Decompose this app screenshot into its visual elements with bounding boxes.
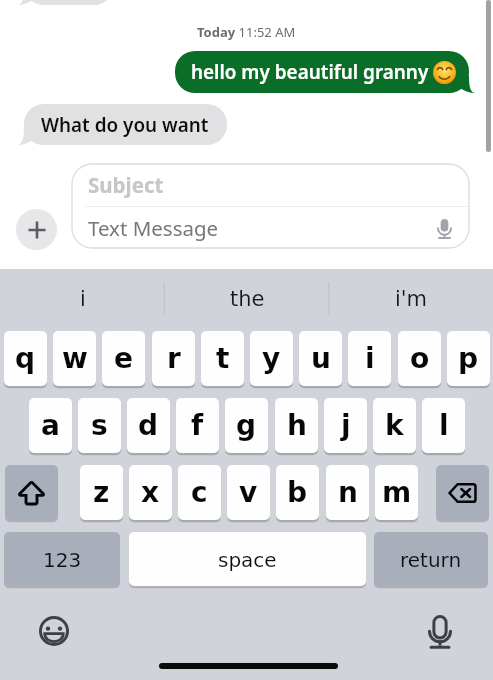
staticText: c: [191, 476, 208, 509]
button[interactable]: o: [398, 331, 441, 386]
staticText: 123: [43, 548, 82, 571]
button[interactable]: Emoji keyboard: [39, 616, 69, 646]
button[interactable]: b: [276, 465, 319, 520]
staticText: s: [91, 409, 108, 442]
button[interactable]: u: [299, 331, 342, 386]
button[interactable]: m: [375, 465, 418, 520]
button[interactable]: t: [201, 331, 244, 386]
staticText: k: [385, 409, 404, 442]
staticText: f: [191, 409, 204, 442]
staticText: space: [218, 548, 277, 571]
button[interactable]: r: [152, 331, 195, 386]
staticText: g: [236, 409, 257, 442]
staticText: l: [439, 409, 449, 442]
staticText: v: [239, 476, 258, 509]
button[interactable]: Backspace: [436, 465, 489, 520]
staticText: o: [410, 342, 430, 375]
staticText: j: [341, 409, 351, 442]
button[interactable]: hello my beautiful granny: [175, 51, 475, 93]
staticText: d: [138, 409, 159, 442]
button[interactable]: Subject: [72, 164, 469, 248]
staticText: hello my beautiful granny: [191, 59, 429, 85]
staticText: i: [80, 287, 86, 311]
button[interactable]: x: [129, 465, 172, 520]
staticText: n: [338, 476, 358, 509]
staticText: Subject: [88, 171, 164, 199]
button[interactable]: i: [348, 331, 391, 386]
button[interactable]: k: [373, 398, 416, 453]
button[interactable]: i'm: [329, 269, 493, 329]
button[interactable]: return: [374, 532, 488, 586]
staticText: a: [41, 409, 60, 442]
button[interactable]: space: [129, 532, 366, 586]
button[interactable]: f: [176, 398, 219, 453]
staticText: i: [365, 342, 375, 375]
staticText: q: [15, 342, 36, 375]
button[interactable]: l: [422, 398, 465, 453]
button[interactable]: Dictation: [428, 615, 452, 649]
button[interactable]: n: [326, 465, 369, 520]
button[interactable]: 123: [4, 532, 120, 586]
staticText: m: [382, 476, 412, 509]
button[interactable]: c: [178, 465, 221, 520]
button[interactable]: q: [4, 331, 47, 386]
button[interactable]: y: [250, 331, 293, 386]
staticText: p: [458, 342, 479, 375]
staticText: What do you want: [41, 112, 209, 138]
staticText: t: [216, 342, 230, 375]
button[interactable]: Shift: [5, 465, 58, 520]
staticText: h: [287, 409, 307, 442]
staticText: r: [167, 342, 181, 375]
button[interactable]: j: [324, 398, 367, 453]
button[interactable]: z: [80, 465, 123, 520]
staticText: x: [141, 476, 160, 509]
button[interactable]: h: [275, 398, 318, 453]
button[interactable]: v: [227, 465, 270, 520]
staticText: return: [400, 548, 462, 571]
button[interactable]: w: [53, 331, 96, 386]
staticText: b: [287, 476, 308, 509]
staticText: w: [62, 342, 88, 375]
staticText: the: [230, 287, 265, 311]
button[interactable]: a: [29, 398, 72, 453]
button[interactable]: What do you want: [18, 104, 227, 145]
staticText: i'm: [395, 287, 428, 311]
staticText: Text Message: [88, 214, 219, 242]
button[interactable]: i: [0, 269, 165, 329]
button[interactable]: d: [127, 398, 170, 453]
button[interactable]: s: [78, 398, 121, 453]
staticText: Today 11:52 AM: [197, 23, 296, 41]
button[interactable]: Add attachment: [16, 209, 57, 250]
button[interactable]: e: [102, 331, 145, 386]
staticText: u: [311, 342, 331, 375]
button[interactable]: Dictate: [437, 219, 452, 239]
button[interactable]: the: [165, 269, 329, 329]
button[interactable]: p: [447, 331, 490, 386]
staticText: e: [114, 342, 133, 375]
staticText: y: [262, 342, 281, 375]
button[interactable]: g: [225, 398, 268, 453]
staticText: z: [93, 476, 110, 509]
